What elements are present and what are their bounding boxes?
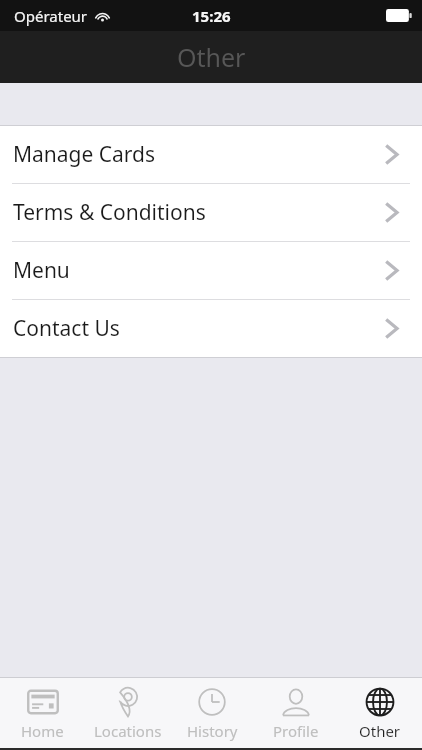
button[interactable]: Other — [338, 678, 422, 748]
staticText: Terms & Conditions — [13, 198, 386, 227]
button[interactable]: Terms & Conditions — [0, 184, 422, 241]
button[interactable]: History — [170, 678, 254, 748]
staticText: Other — [177, 40, 246, 74]
button[interactable]: Home — [0, 678, 85, 748]
staticText: History — [187, 721, 238, 741]
staticText: Manage Cards — [13, 140, 386, 169]
staticText: Opérateur — [14, 6, 88, 26]
button[interactable]: Contact Us — [0, 300, 422, 357]
button[interactable]: Locations — [85, 678, 170, 748]
staticText: Home — [21, 721, 64, 741]
staticText: Other — [359, 721, 401, 741]
staticText: Locations — [94, 721, 162, 741]
button[interactable]: Profile — [254, 678, 338, 748]
button[interactable]: Menu — [0, 242, 422, 299]
staticText: Profile — [273, 721, 319, 741]
button[interactable]: Manage Cards — [0, 126, 422, 183]
staticText: Contact Us — [13, 314, 386, 343]
staticText: 15:26 — [192, 6, 231, 26]
staticText: Menu — [13, 256, 386, 285]
